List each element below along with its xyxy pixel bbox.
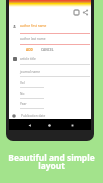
button[interactable]: CANCEL [40,47,55,53]
staticText: author first name [20,24,47,28]
button[interactable]: No [20,92,90,99]
staticText: Vol [20,81,25,85]
button[interactable]: Save [71,7,81,17]
staticText: Year [20,102,27,106]
staticText: author last name [20,37,46,41]
button[interactable]: Recent apps [68,121,76,129]
button[interactable]: Share [80,7,90,17]
button[interactable]: Home [45,121,53,129]
button[interactable]: article title [20,57,90,64]
staticText: CANCEL [41,48,54,52]
staticText: ADD [26,48,33,52]
button[interactable]: Back [25,121,33,129]
staticText: Publication date [21,114,46,118]
button[interactable]: Year [20,102,90,109]
button[interactable]: Vol [20,81,90,88]
button[interactable]: author last name [20,37,90,44]
button[interactable]: ADD [25,47,34,53]
button[interactable]: author first name [20,24,90,34]
staticText: No [20,92,25,96]
staticText: journal name [20,70,40,74]
button[interactable]: journal name [20,70,90,77]
staticText: Beautiful and simple layout [4,152,99,172]
staticText: article title [20,57,36,61]
button[interactable]: Publication date [12,114,46,118]
